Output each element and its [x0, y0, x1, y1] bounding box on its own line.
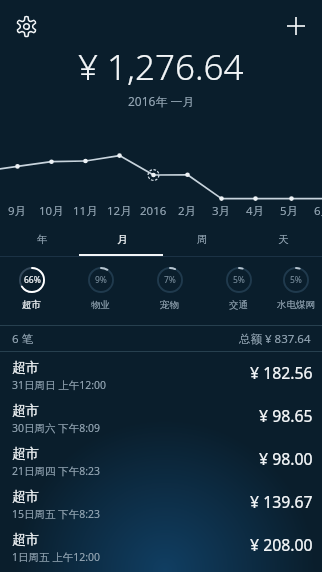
staticText: 5% [233, 274, 245, 286]
staticText: 11月 [73, 203, 98, 219]
staticText: 年 [37, 233, 48, 246]
staticText: 超市 [12, 488, 39, 505]
staticText: 月 [117, 233, 128, 246]
staticText: 6月 [314, 203, 322, 219]
button[interactable]: 年 [2, 225, 82, 254]
staticText: ¥ 182.56 [250, 362, 313, 384]
button[interactable]: 66% [0, 267, 66, 311]
button[interactable]: 超市 [0, 528, 322, 571]
staticText: 21日周四 下午8:23 [12, 464, 101, 478]
staticText: 5% [290, 274, 302, 286]
staticText: 5月 [280, 203, 299, 219]
staticText: ¥ 98.00 [259, 448, 313, 470]
staticText: 超市 [22, 299, 41, 311]
button[interactable]: 月 [82, 225, 162, 254]
staticText: 物业 [91, 299, 110, 311]
staticText: 2月 [178, 203, 197, 219]
button[interactable]: Settings [7, 7, 45, 45]
button[interactable]: 天 [243, 225, 322, 254]
staticText: 宠物 [160, 299, 179, 311]
staticText: 总额 ¥ 837.64 [239, 331, 311, 347]
staticText: 天 [278, 233, 289, 246]
button[interactable]: Add [277, 7, 315, 45]
staticText: 超市 [12, 359, 39, 376]
button[interactable]: 7% [135, 267, 204, 311]
staticText: ¥ 139.67 [250, 491, 313, 513]
button[interactable]: 超市 [0, 356, 322, 399]
staticText: 超市 [12, 402, 39, 419]
button[interactable]: 9% [66, 267, 135, 311]
staticText: 9月 [8, 203, 27, 219]
button[interactable]: 超市 [0, 399, 322, 442]
staticText: 3月 [212, 203, 231, 219]
staticText: 交通 [229, 299, 248, 311]
staticText: ¥ 98.65 [259, 405, 313, 427]
staticText: 10月 [39, 203, 64, 219]
staticText: 2016 [140, 203, 167, 219]
staticText: 66% [24, 274, 41, 286]
button[interactable]: 5% [204, 267, 273, 311]
staticText: 30日周六 下午8:09 [12, 421, 101, 435]
button[interactable]: 5% [273, 267, 319, 311]
staticText: 15日周五 下午8:23 [12, 507, 101, 521]
button[interactable]: 超市 [0, 485, 322, 528]
button[interactable]: 超市 [0, 442, 322, 485]
staticText: 12月 [107, 203, 132, 219]
button[interactable]: 周 [162, 225, 243, 254]
staticText: 9% [95, 274, 107, 286]
staticText: 7% [164, 274, 176, 286]
staticText: 4月 [246, 203, 265, 219]
staticText: 超市 [12, 531, 39, 548]
staticText: 2016年 一月 [128, 93, 195, 109]
staticText: 1日周五 上午12:00 [12, 550, 101, 564]
staticText: 水电煤网 [277, 299, 315, 311]
staticText: 超市 [12, 445, 39, 462]
staticText: 周 [197, 233, 208, 246]
staticText: ¥ 208.00 [250, 534, 313, 556]
staticText: 31日周日 上午12:00 [12, 378, 107, 392]
staticText: 6 笔 [12, 331, 34, 347]
staticText: ¥ 1,276.64 [78, 43, 244, 91]
